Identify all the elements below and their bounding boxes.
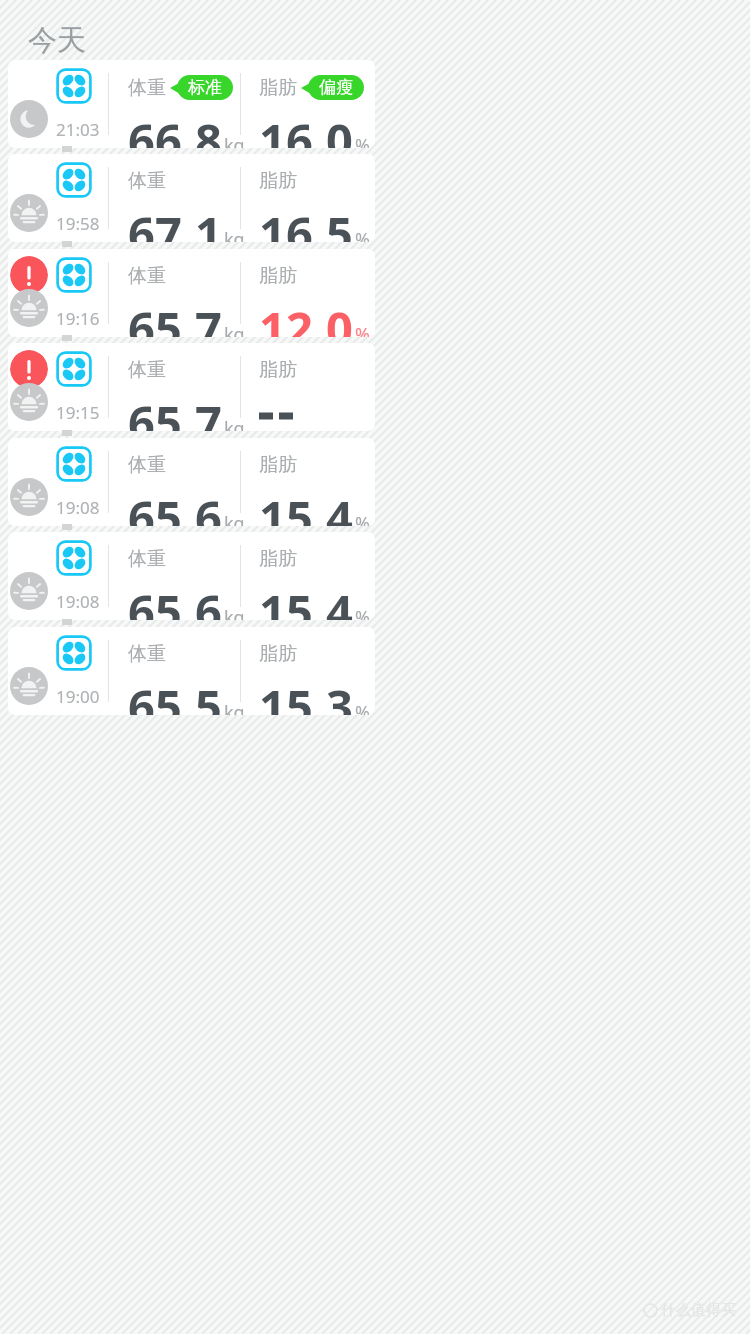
- staticText: kg: [224, 605, 245, 620]
- staticText: 19:08: [56, 590, 100, 613]
- staticText: kg: [224, 322, 245, 337]
- staticText: 19:00: [56, 685, 100, 708]
- staticText: 65.5: [128, 674, 222, 715]
- staticText: 脂肪: [259, 453, 297, 477]
- staticText: 偏瘦: [319, 77, 353, 98]
- staticText: 脂肪: [259, 358, 297, 382]
- staticText: 脂肪: [259, 547, 297, 571]
- button[interactable]: 19:16: [8, 249, 375, 337]
- button[interactable]: Abnormal measurement warning: [10, 350, 48, 388]
- staticText: 今天: [28, 22, 86, 59]
- staticText: %: [355, 133, 370, 148]
- staticText: 脂肪: [259, 642, 297, 666]
- button[interactable]: 21:03: [8, 60, 375, 148]
- staticText: 15.4: [259, 579, 353, 620]
- staticText: 16.0: [259, 108, 353, 148]
- staticText: 66.8: [128, 108, 222, 148]
- staticText: 65.6: [128, 485, 222, 526]
- staticText: 体重: [128, 264, 166, 288]
- staticText: %: [355, 322, 370, 337]
- staticText: 体重: [128, 358, 166, 382]
- staticText: 65.7: [128, 296, 222, 337]
- staticText: 16.5: [259, 201, 353, 242]
- button[interactable]: 19:08: [8, 532, 375, 620]
- staticText: 19:15: [56, 401, 100, 424]
- staticText: 什么值得买: [661, 1301, 736, 1320]
- staticText: 15.4: [259, 485, 353, 526]
- staticText: 脂肪: [259, 76, 297, 100]
- staticText: 65.7: [128, 390, 222, 431]
- staticText: 19:16: [56, 307, 100, 330]
- staticText: 体重: [128, 453, 166, 477]
- staticText: 65.6: [128, 579, 222, 620]
- button[interactable]: 19:58: [8, 154, 375, 242]
- staticText: %: [355, 511, 370, 526]
- staticText: %: [355, 227, 370, 242]
- staticText: 标准: [188, 77, 222, 98]
- staticText: 脂肪: [259, 264, 297, 288]
- button[interactable]: 19:00: [8, 627, 375, 715]
- staticText: 体重: [128, 642, 166, 666]
- staticText: %: [355, 605, 370, 620]
- staticText: kg: [224, 511, 245, 526]
- staticText: 15.3: [259, 674, 353, 715]
- staticText: kg: [224, 133, 245, 148]
- staticText: 12.0: [259, 296, 353, 337]
- button[interactable]: Abnormal measurement warning: [10, 256, 48, 294]
- staticText: 67.1: [128, 201, 222, 242]
- staticText: 体重: [128, 547, 166, 571]
- staticText: 21:03: [56, 118, 100, 141]
- staticText: 19:08: [56, 496, 100, 519]
- staticText: %: [355, 700, 370, 715]
- staticText: 脂肪: [259, 169, 297, 193]
- button[interactable]: 19:08: [8, 438, 375, 526]
- staticText: 19:58: [56, 212, 100, 235]
- staticText: 体重: [128, 76, 166, 100]
- button[interactable]: 19:15: [8, 343, 375, 431]
- staticText: 体重: [128, 169, 166, 193]
- staticText: kg: [224, 227, 245, 242]
- staticText: kg: [224, 416, 245, 431]
- staticText: kg: [224, 700, 245, 715]
